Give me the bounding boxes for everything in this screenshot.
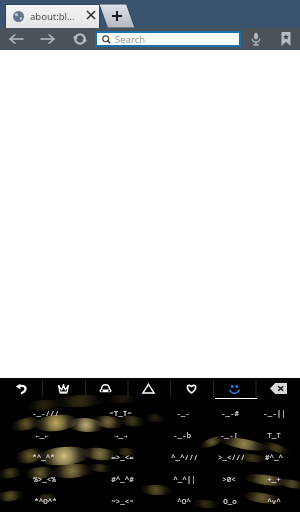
button[interactable]: Backspace [256,378,300,399]
button[interactable]: Close tab [81,5,100,24]
button[interactable] [240,468,300,490]
button[interactable]: Bookmarks [271,28,300,50]
button[interactable] [0,402,60,424]
staticText: ^_^|| [173,474,196,484]
button[interactable]: New tab [0,0,300,28]
staticText: -_-! [220,430,238,440]
button[interactable] [180,468,240,490]
button[interactable]: Forward [32,28,64,50]
staticText: -_-/// [32,408,59,418]
staticText: Search [115,33,146,45]
button[interactable]: Love [170,378,213,399]
staticText: *^O^* [34,496,57,506]
button[interactable] [60,490,120,512]
button[interactable] [180,490,240,512]
button[interactable] [60,424,120,446]
button[interactable] [120,402,180,424]
button[interactable] [240,402,300,424]
button[interactable] [120,424,180,446]
button[interactable] [240,490,300,512]
staticText: ^O^ [177,496,191,506]
button[interactable]: Reload [64,28,95,50]
staticText: >0< [222,474,236,484]
button[interactable] [180,446,240,468]
staticText: ^v^ [267,496,281,506]
button[interactable] [120,490,180,512]
staticText: O_o [223,496,237,506]
staticText: ^_^/// [171,452,198,462]
staticText: #^_^# [111,474,134,484]
button[interactable]: Search [97,33,239,45]
button[interactable]: Symbols [127,378,170,399]
button[interactable]: Undo [0,378,42,399]
button[interactable] [180,424,240,446]
button[interactable] [60,468,120,490]
button[interactable]: about:bl… [6,5,99,28]
button[interactable] [120,446,180,468]
button[interactable] [120,468,180,490]
staticText: -_- [176,408,190,418]
button[interactable] [0,424,60,446]
button[interactable]: Voice search [241,28,271,50]
staticText: =>_<= [111,452,134,462]
button[interactable] [60,402,120,424]
staticText: %>_<% [33,474,56,484]
button[interactable] [240,424,300,446]
staticText: -_-# [221,408,239,418]
button[interactable]: Back [0,28,32,50]
staticText: ~T_T~ [109,408,132,418]
button[interactable]: Faces [213,378,256,399]
staticText: ~>_<~ [111,496,134,506]
button[interactable] [240,446,300,468]
button[interactable] [60,446,120,468]
button[interactable] [0,468,60,490]
staticText: *^_^* [32,452,55,462]
button[interactable] [0,490,60,512]
staticText: #^_^ [265,452,283,462]
staticText: -_-|| [263,408,286,418]
staticText: T_T [267,430,281,440]
staticText: about:bl… [30,10,75,23]
button[interactable]: Animals [84,378,127,399]
staticText: →_→ [114,430,128,440]
staticText: -_-b [173,430,191,440]
staticText: ←_← [35,430,49,440]
staticText: +_+ [267,474,281,484]
button[interactable] [0,446,60,468]
button[interactable] [180,402,240,424]
staticText: >_</// [218,452,245,462]
button[interactable]: Royal [42,378,84,399]
